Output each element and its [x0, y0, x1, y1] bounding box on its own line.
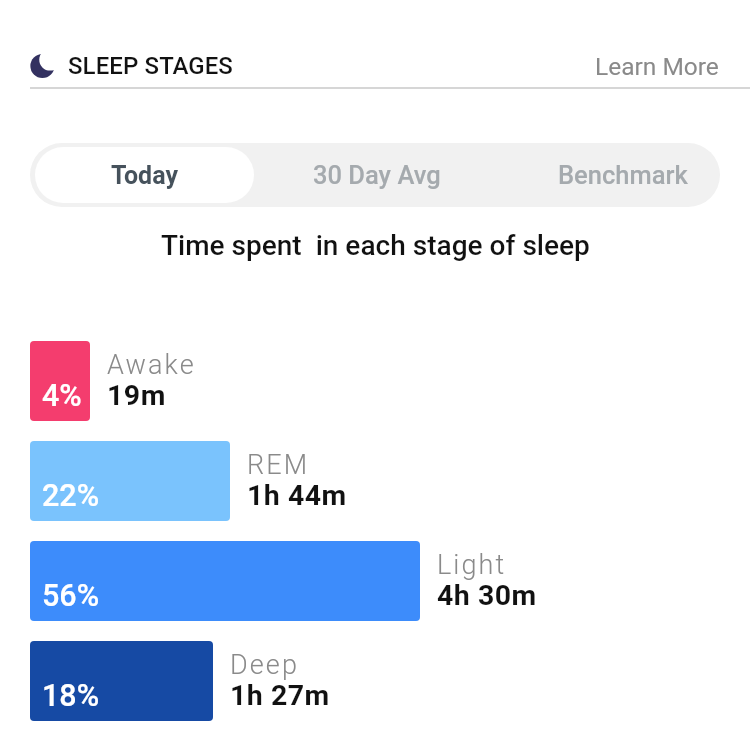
- button[interactable]: Today: [35, 147, 254, 203]
- staticText: Learn More: [595, 52, 719, 81]
- staticText: 19m: [107, 379, 166, 412]
- other: Sleep: [29, 52, 57, 80]
- staticText: Light: [437, 549, 507, 581]
- staticText: Deep: [230, 649, 299, 681]
- staticText: 1h 44m: [247, 479, 347, 512]
- button[interactable]: 22%: [30, 441, 230, 521]
- staticText: Benchmark: [558, 160, 688, 190]
- staticText: 4h 30m: [437, 579, 537, 612]
- staticText: 22%: [42, 478, 100, 514]
- staticText: Today: [111, 161, 178, 190]
- button[interactable]: Learn More: [595, 38, 719, 94]
- button[interactable]: Benchmark: [517, 143, 720, 207]
- staticText: 18%: [42, 678, 100, 714]
- staticText: 1h 27m: [230, 679, 330, 712]
- staticText: 30 Day Avg: [313, 160, 441, 190]
- staticText: SLEEP STAGES: [68, 52, 233, 80]
- staticText: REM: [247, 449, 310, 481]
- button[interactable]: 4%: [30, 341, 90, 421]
- staticText: 4%: [42, 378, 82, 414]
- staticText: Awake: [107, 349, 196, 381]
- button[interactable]: 56%: [30, 541, 420, 621]
- button[interactable]: 30 Day Avg: [262, 143, 492, 207]
- staticText: Time spent in each stage of sleep: [161, 229, 590, 262]
- staticText: 56%: [42, 578, 100, 614]
- button[interactable]: 18%: [30, 641, 213, 721]
